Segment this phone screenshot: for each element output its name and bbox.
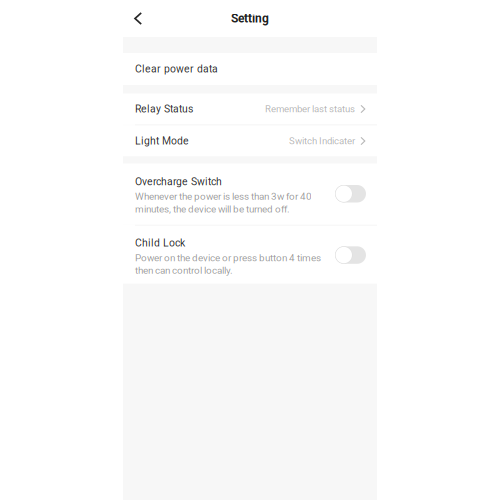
staticText: Child Lock [135, 237, 185, 249]
staticText: Setting [231, 11, 269, 26]
staticText: Power on the device or press button 4 ti… [135, 252, 321, 264]
staticText: Remember last status [265, 103, 355, 115]
staticText: Switch Indicater [289, 135, 355, 147]
staticText: then can control locally. [135, 265, 233, 276]
staticText: Overcharge Switch [135, 175, 222, 188]
button[interactable]: Back [123, 5, 160, 31]
staticText: Relay Status [135, 103, 193, 115]
button[interactable]: Overcharge Switch [335, 185, 366, 202]
staticText: minutes, the device will be turned off. [135, 203, 290, 215]
button[interactable]: Clear power data [123, 53, 377, 85]
button[interactable]: Light Mode [123, 125, 377, 156]
staticText: Whenever the power is less than 3w for 4… [135, 191, 312, 202]
button[interactable]: Relay Status [123, 93, 377, 124]
staticText: Light Mode [135, 135, 189, 147]
staticText: Clear power data [135, 63, 218, 75]
button[interactable]: Child Lock [335, 246, 366, 264]
